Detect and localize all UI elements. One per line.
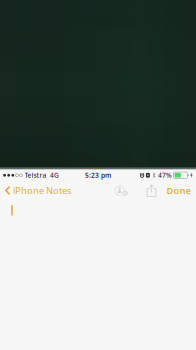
staticText: 47% xyxy=(158,171,172,180)
button[interactable]: Add People xyxy=(108,180,140,201)
staticText: 4G xyxy=(50,171,59,180)
staticText: iPhone Notes xyxy=(13,184,71,197)
button[interactable]: Share xyxy=(140,180,160,201)
staticText: 5:23 pm xyxy=(85,171,111,180)
button[interactable]: Done xyxy=(160,180,196,201)
staticText: Telstra xyxy=(25,171,47,180)
staticText: Done xyxy=(166,184,190,197)
button[interactable]: iPhone Notes xyxy=(0,180,75,201)
